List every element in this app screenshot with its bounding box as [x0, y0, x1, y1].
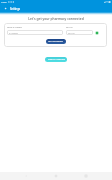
staticText: Port No [68, 32, 75, 34]
button[interactable]: Home [52, 172, 60, 180]
staticText: Server IP Address [7, 26, 22, 28]
staticText: 12:30 [1, 1, 7, 4]
staticText: Test Connection [48, 40, 64, 43]
button[interactable]: Back [0, 4, 10, 13]
staticText: Save & Continue [48, 58, 65, 61]
staticText: Let's get your pharmacy connected [0, 16, 112, 20]
button[interactable]: Test Connection [46, 39, 66, 44]
button[interactable]: Recents [82, 172, 90, 180]
button[interactable]: Port No [66, 30, 93, 35]
staticText: Settings [10, 7, 21, 11]
button[interactable]: Save & Continue [45, 57, 67, 62]
other: Connection status [95, 31, 99, 35]
button[interactable]: IP Address [7, 30, 63, 35]
staticText: Port No [66, 26, 73, 28]
staticText: IP Address [9, 32, 18, 34]
